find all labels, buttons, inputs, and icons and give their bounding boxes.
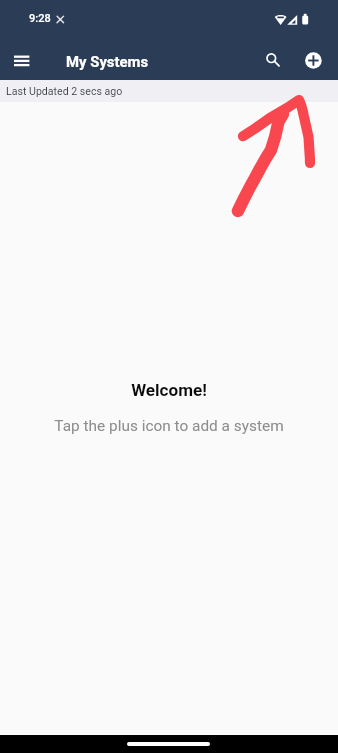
button[interactable]: Search [254, 41, 292, 79]
button[interactable]: Add a system [294, 41, 332, 79]
staticText: 9:28 [29, 12, 51, 25]
staticText: Last Updated 2 secs ago [6, 85, 123, 97]
staticText: Tap the plus icon to add a system [0, 417, 338, 435]
button[interactable]: Open navigation drawer [2, 39, 41, 78]
staticText: My Systems [66, 53, 149, 70]
staticText: Welcome! [0, 380, 338, 400]
